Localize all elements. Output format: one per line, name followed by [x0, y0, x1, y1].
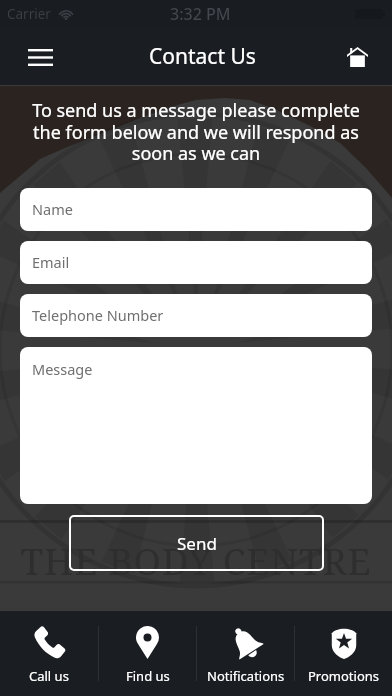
button[interactable]: Promotions [295, 611, 392, 696]
button[interactable]: Home [336, 36, 378, 78]
staticText: Find us [126, 667, 170, 685]
staticText: Notifications [207, 667, 285, 685]
button[interactable]: Email [20, 241, 372, 284]
button[interactable]: Notifications [197, 611, 294, 696]
staticText: 3:32 PM [170, 3, 231, 25]
button[interactable]: Open navigation menu [18, 35, 62, 79]
staticText: Name [32, 199, 73, 219]
button[interactable]: Name [20, 188, 372, 231]
staticText: Call us [29, 667, 69, 685]
button[interactable]: Message [20, 347, 372, 504]
button[interactable]: Call us [0, 611, 98, 696]
staticText: THE BODY CENTRE [0, 535, 392, 585]
staticText: Promotions [308, 667, 380, 685]
staticText: To send us a message please complete the… [0, 98, 392, 165]
staticText: Message [32, 359, 93, 379]
staticText: Send [177, 532, 217, 555]
button[interactable]: Find us [99, 611, 196, 696]
staticText: Carrier [7, 5, 51, 23]
staticText: Email [32, 252, 70, 272]
button[interactable]: Send [69, 515, 324, 571]
button[interactable]: Telephone Number [20, 294, 372, 337]
staticText: Contact Us [149, 42, 256, 71]
staticText: Telephone Number [32, 305, 164, 325]
